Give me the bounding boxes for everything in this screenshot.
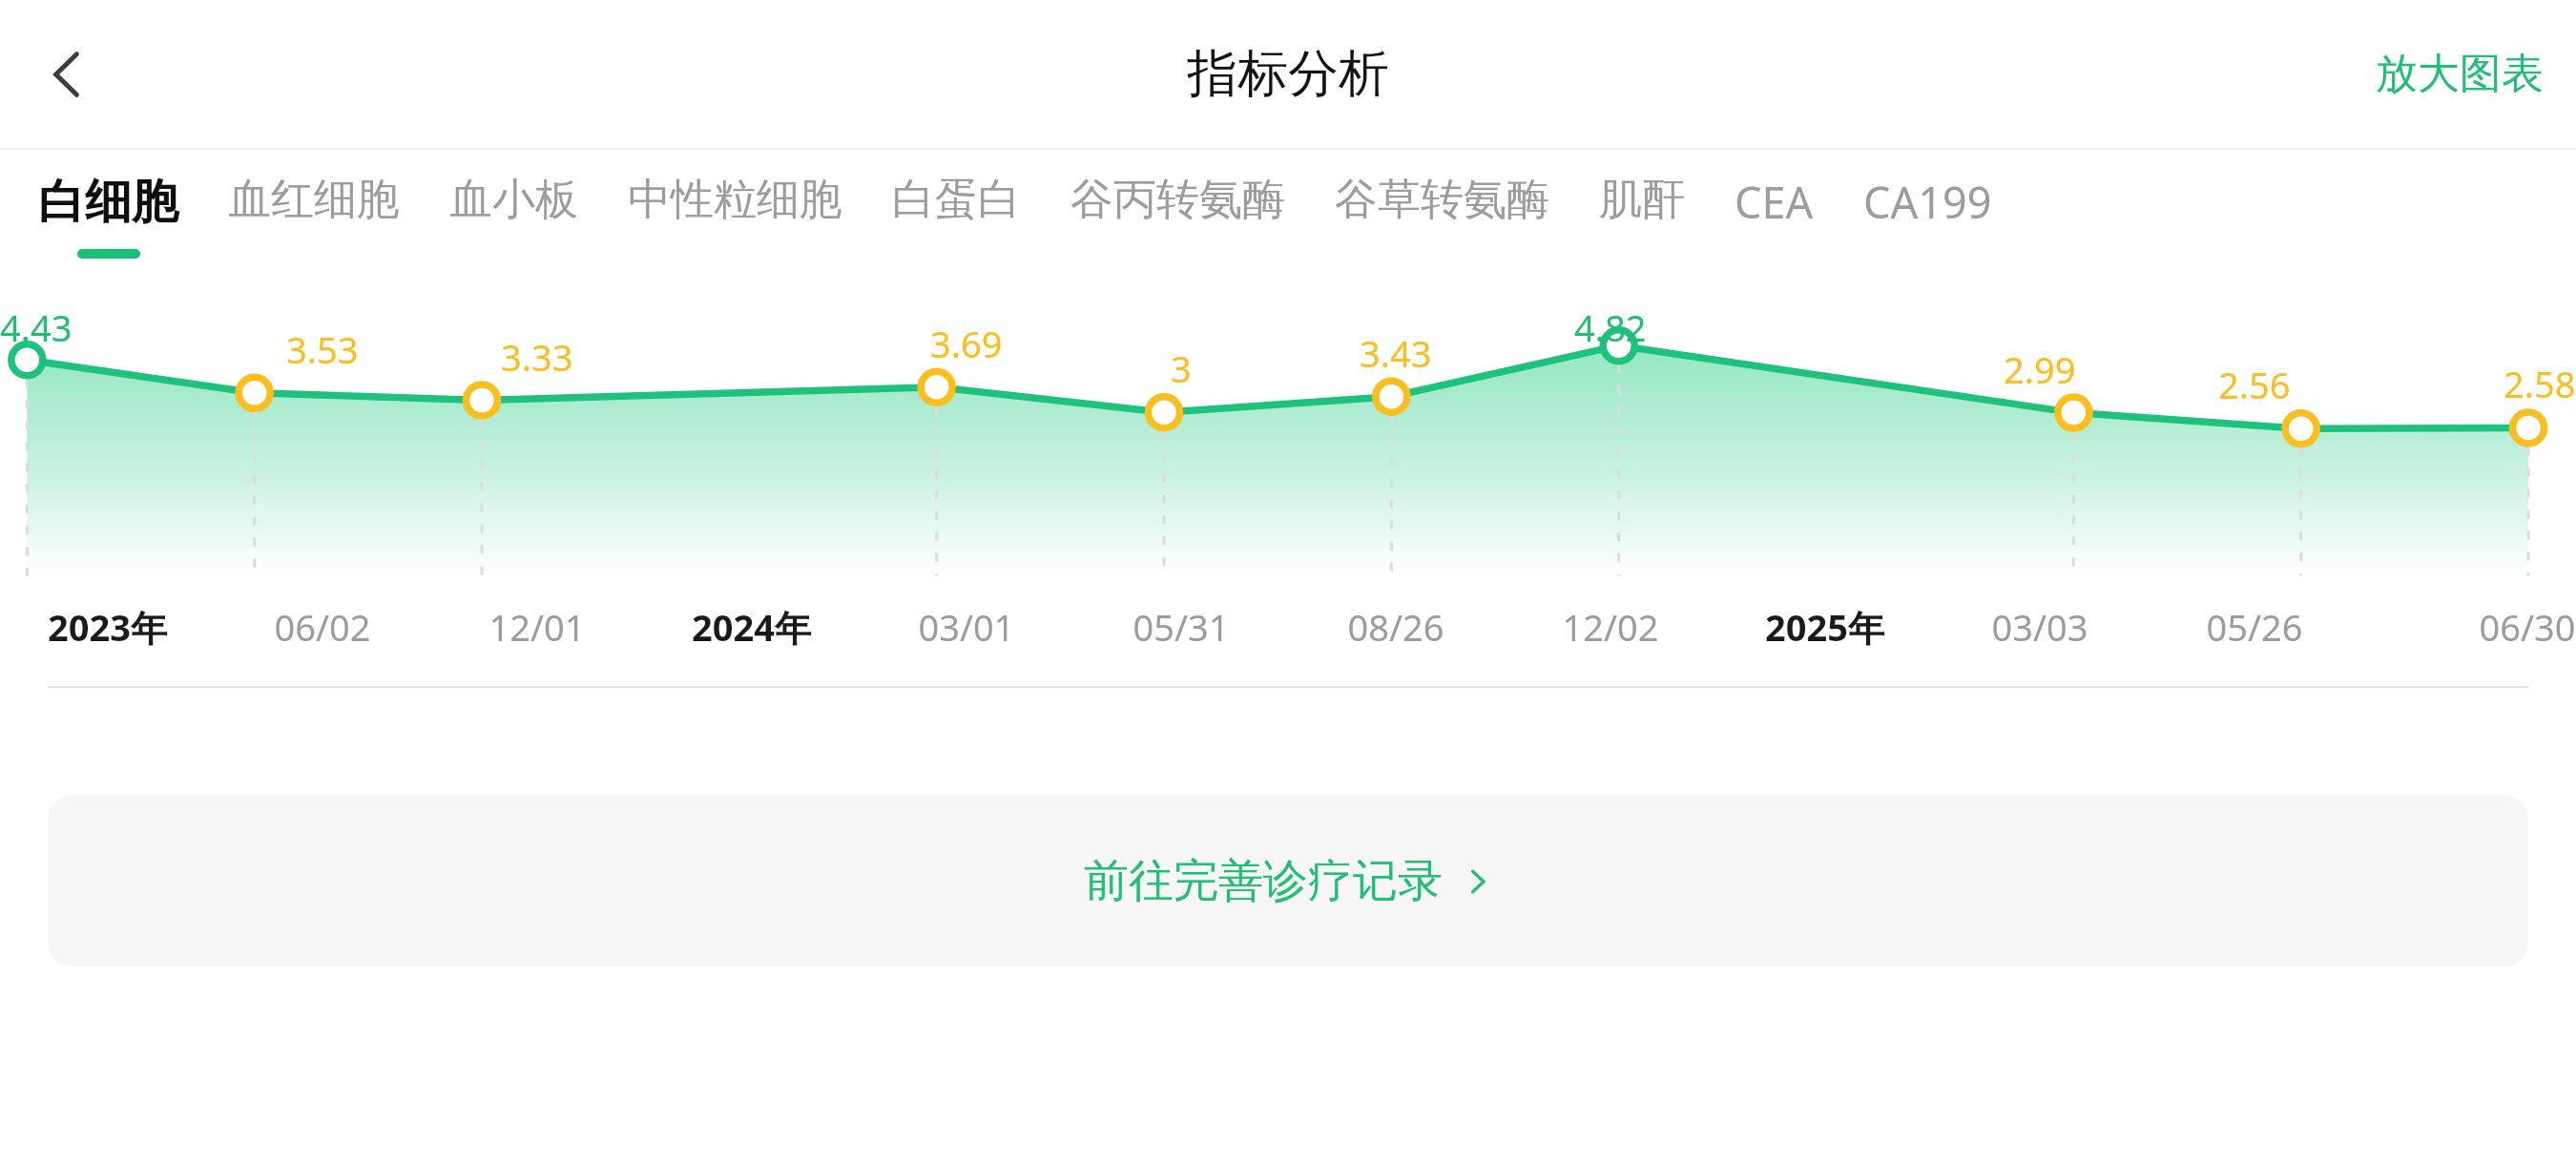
staticText: 2.56 xyxy=(2218,360,2291,409)
button[interactable]: 肌酐 xyxy=(1574,150,1710,250)
button[interactable]: CEA xyxy=(1710,150,1839,254)
staticText: 05/26 xyxy=(2206,602,2303,652)
staticText: 2.58 xyxy=(2503,359,2576,408)
button[interactable]: 白蛋白 xyxy=(867,150,1046,250)
staticText: CA199 xyxy=(1863,173,1992,231)
staticText: 肌酐 xyxy=(1599,173,1685,227)
button[interactable]: 前往完善诊疗记录 xyxy=(48,795,2528,967)
staticText: 前往完善诊疗记录 xyxy=(1084,853,1443,909)
staticText: 2025年 xyxy=(1765,602,1884,652)
button[interactable]: 放大图表 xyxy=(2357,32,2563,115)
button[interactable]: CA199 xyxy=(1839,150,2017,254)
staticText: 12/01 xyxy=(488,602,586,652)
staticText: 06/02 xyxy=(274,602,371,652)
staticText: 3.53 xyxy=(286,324,359,374)
staticText: 血红细胞 xyxy=(228,173,400,227)
staticText: 4.82 xyxy=(1574,302,1647,352)
staticText: 放大图表 xyxy=(2376,48,2544,100)
staticText: 血小板 xyxy=(449,173,578,227)
button[interactable]: 谷丙转氨酶 xyxy=(1046,150,1310,250)
staticText: 谷草转氨酶 xyxy=(1335,173,1549,227)
staticText: 白蛋白 xyxy=(892,173,1021,227)
staticText: 谷丙转氨酶 xyxy=(1070,173,1285,227)
staticText: 3.43 xyxy=(1360,328,1432,378)
button[interactable]: 血小板 xyxy=(425,150,603,250)
staticText: 03/03 xyxy=(1991,602,2088,652)
staticText: 2023年 xyxy=(48,602,167,652)
staticText: 4.43 xyxy=(0,302,73,352)
staticText: 06/30 xyxy=(2479,602,2576,652)
button[interactable]: Back xyxy=(21,29,113,120)
staticText: 03/01 xyxy=(918,602,1015,652)
button[interactable]: 血红细胞 xyxy=(203,150,425,250)
staticText: 指标分析 xyxy=(1187,42,1389,106)
staticText: 白细胞 xyxy=(38,173,178,232)
button[interactable]: 白细胞 xyxy=(13,150,203,281)
staticText: CEA xyxy=(1735,173,1814,231)
staticText: 12/02 xyxy=(1562,602,1659,652)
staticText: 中性粒细胞 xyxy=(628,173,842,227)
staticText: 08/26 xyxy=(1347,602,1444,652)
staticText: 3.33 xyxy=(501,332,573,382)
staticText: 3 xyxy=(1171,343,1192,393)
button[interactable]: 谷草转氨酶 xyxy=(1310,150,1574,250)
staticText: 2.99 xyxy=(2004,344,2076,394)
staticText: 05/31 xyxy=(1132,602,1230,652)
staticText: 2024年 xyxy=(692,602,811,652)
button[interactable]: 中性粒细胞 xyxy=(603,150,867,250)
staticText: 3.69 xyxy=(930,319,1003,368)
